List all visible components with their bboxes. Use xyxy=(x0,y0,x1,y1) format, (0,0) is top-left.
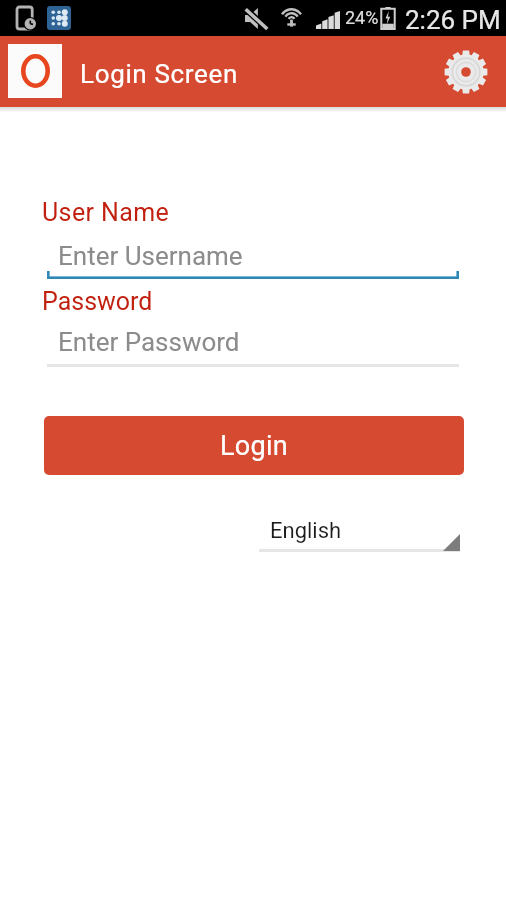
staticText: Enter Password xyxy=(58,327,240,357)
staticText: Login xyxy=(220,430,289,462)
staticText: English xyxy=(270,518,342,544)
button[interactable]: Password input xyxy=(47,316,459,367)
staticText: 2:26 PM xyxy=(405,5,501,35)
button[interactable]: User Name input xyxy=(47,230,459,279)
staticText: Login Screen xyxy=(80,59,238,89)
staticText: User Name xyxy=(42,198,170,227)
button[interactable]: Settings xyxy=(442,48,490,96)
staticText: Enter Username xyxy=(58,241,243,271)
staticText: Password xyxy=(42,287,153,316)
button[interactable]: Login xyxy=(44,416,464,475)
staticText: 24% xyxy=(345,7,379,28)
button[interactable]: Language: English xyxy=(259,508,460,552)
